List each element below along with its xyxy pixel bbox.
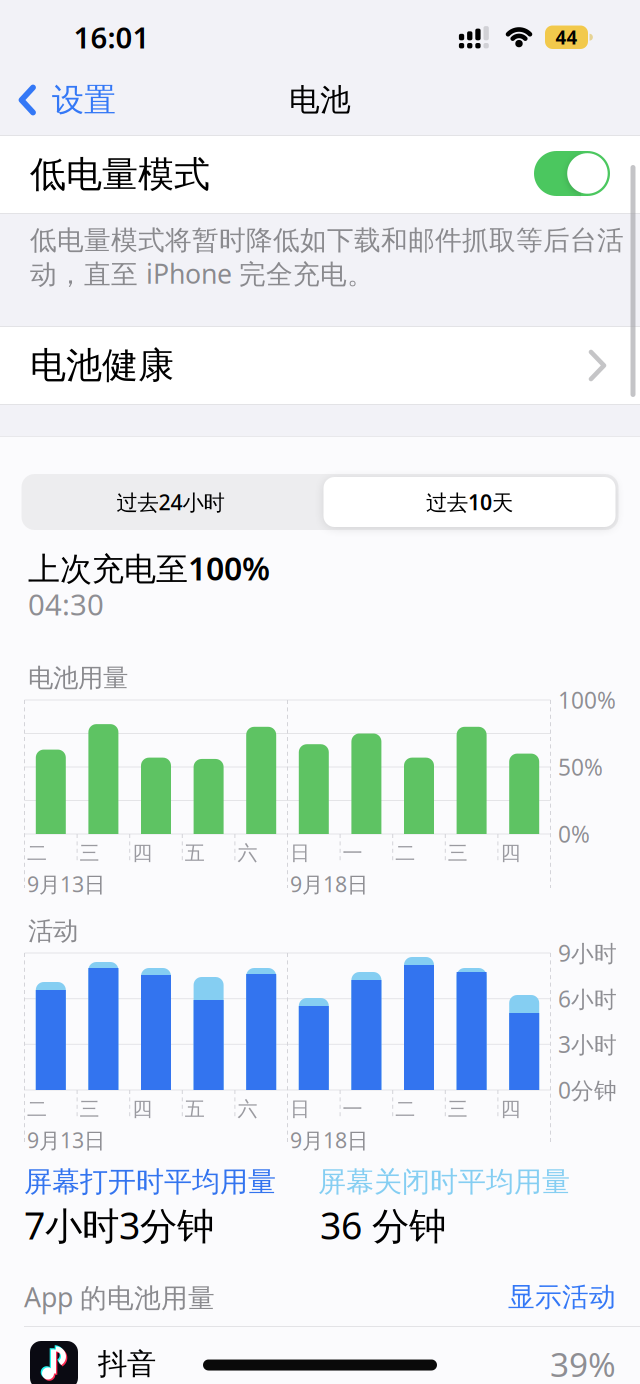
staticText: 过去10天: [426, 488, 513, 516]
staticText: 9月18日: [290, 870, 368, 898]
staticText: 0分钟: [558, 1075, 617, 1105]
staticText: 六: [237, 1097, 257, 1121]
staticText: 36 分钟: [320, 1200, 446, 1250]
staticText: 屏幕关闭时平均用量: [318, 1165, 570, 1199]
staticText: 三: [80, 1097, 100, 1121]
staticText: 电池用量: [28, 662, 128, 693]
button[interactable]: 过去10天: [320, 474, 618, 530]
button[interactable]: 设置: [19, 78, 159, 122]
staticText: 二: [27, 841, 47, 865]
staticText: 3小时: [558, 1029, 617, 1059]
staticText: 7小时3分钟: [24, 1200, 214, 1250]
staticText: 一: [343, 841, 363, 865]
staticText: 日: [290, 1097, 310, 1121]
staticText: 39%: [550, 1342, 616, 1384]
staticText: 6小时: [558, 984, 617, 1014]
button[interactable]: 抖音: [0, 1340, 640, 1384]
staticText: 四: [132, 1097, 152, 1121]
staticText: 动，直至 iPhone 完全充电。: [30, 256, 374, 291]
staticText: 9月13日: [27, 1126, 105, 1154]
staticText: 9小时: [558, 938, 617, 968]
staticText: 0%: [558, 819, 590, 849]
staticText: 屏幕打开时平均用量: [24, 1165, 276, 1199]
staticText: 上次充电至100%: [28, 547, 270, 589]
staticText: 9月13日: [27, 870, 105, 898]
staticText: 五: [185, 841, 205, 865]
staticText: 显示活动: [508, 1281, 616, 1313]
staticText: 四: [132, 841, 152, 865]
staticText: 44: [555, 25, 577, 50]
staticText: 抖音: [98, 1346, 156, 1382]
staticText: 二: [395, 1097, 415, 1121]
staticText: 日: [290, 841, 310, 865]
staticText: 活动: [28, 915, 78, 946]
staticText: 设置: [52, 80, 116, 120]
staticText: 低电量模式将暂时降低如下载和邮件抓取等后台活: [30, 224, 624, 257]
staticText: 三: [448, 1097, 468, 1121]
staticText: 五: [185, 1097, 205, 1121]
button[interactable]: 过去24小时: [21, 474, 319, 530]
staticText: 四: [500, 841, 520, 865]
button[interactable]: 电池健康: [0, 327, 640, 404]
staticText: 电池: [289, 81, 351, 119]
staticText: 50%: [558, 752, 603, 782]
staticText: 电池健康: [30, 343, 174, 388]
staticText: 二: [27, 1097, 47, 1121]
staticText: 二: [395, 841, 415, 865]
staticText: App 的电池用量: [24, 1279, 215, 1315]
staticText: 三: [80, 841, 100, 865]
button[interactable]: [534, 151, 610, 196]
staticText: 一: [343, 1097, 363, 1121]
staticText: 三: [448, 841, 468, 865]
staticText: 16:01: [73, 17, 149, 56]
staticText: 六: [237, 841, 257, 865]
button[interactable]: 显示活动: [456, 1283, 616, 1311]
staticText: 过去24小时: [116, 488, 224, 516]
staticText: 低电量模式: [30, 152, 210, 197]
staticText: 04:30: [28, 584, 104, 623]
staticText: 100%: [558, 685, 616, 715]
staticText: 四: [500, 1097, 520, 1121]
staticText: 9月18日: [290, 1126, 368, 1154]
